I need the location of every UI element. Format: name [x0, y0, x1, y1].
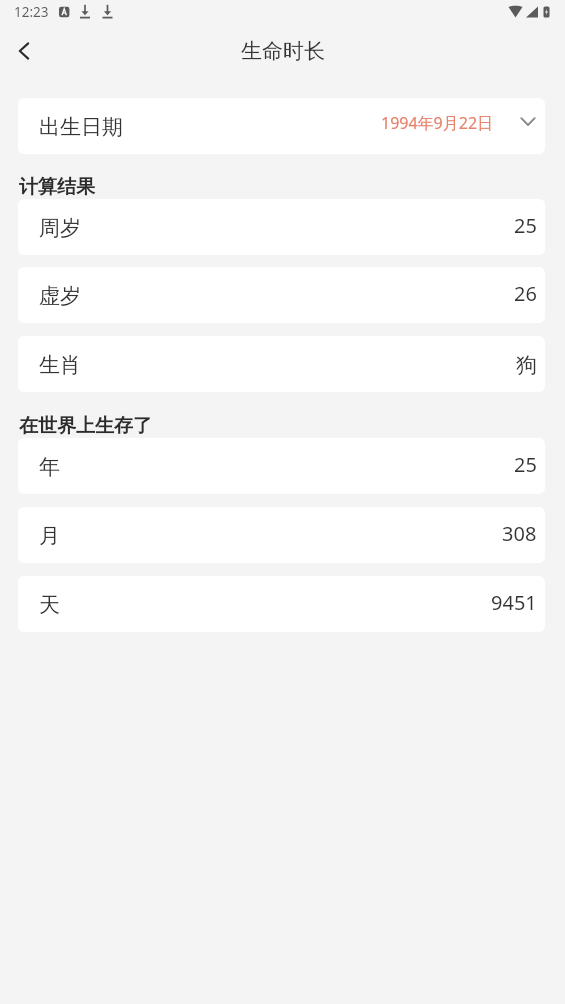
- button[interactable]: 出生日期: [18, 98, 545, 154]
- staticText: 25: [514, 451, 537, 478]
- staticText: 25: [514, 212, 537, 239]
- staticText: 在世界上生存了: [19, 414, 152, 438]
- button[interactable]: 生肖: [18, 336, 545, 392]
- staticText: 出生日期: [39, 114, 123, 140]
- staticText: 天: [39, 592, 60, 618]
- staticText: 计算结果: [19, 175, 95, 199]
- staticText: 狗: [516, 352, 537, 378]
- button[interactable]: 虚岁: [18, 267, 545, 323]
- staticText: 月: [39, 523, 60, 549]
- button[interactable]: 月: [18, 507, 545, 563]
- button[interactable]: 周岁: [18, 199, 545, 255]
- staticText: 26: [514, 280, 537, 307]
- button[interactable]: 年: [18, 438, 545, 494]
- staticText: 生命时长: [241, 38, 325, 64]
- button[interactable]: Back: [1, 28, 47, 74]
- staticText: 308: [502, 520, 537, 547]
- staticText: 虚岁: [39, 283, 81, 309]
- button[interactable]: 天: [18, 576, 545, 632]
- staticText: 周岁: [39, 215, 81, 241]
- staticText: 年: [39, 454, 60, 480]
- staticText: 生肖: [39, 352, 81, 378]
- staticText: 1994年9月22日: [381, 112, 494, 134]
- staticText: 9451: [491, 589, 537, 616]
- staticText: 12:23: [14, 3, 49, 21]
